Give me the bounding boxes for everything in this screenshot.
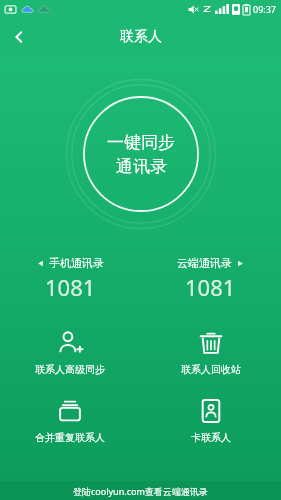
staticText: 通讯录 xyxy=(116,156,167,177)
staticText: 1081 xyxy=(45,272,96,302)
staticText: 合并重复联系人 xyxy=(35,431,105,444)
staticText: 登陆coolyun.com查看云端通讯录 xyxy=(73,485,208,497)
staticText: 一键同步 xyxy=(107,132,175,153)
staticText: 手机通讯录 xyxy=(49,256,104,270)
button[interactable]: 手机通讯录 xyxy=(0,256,140,302)
button[interactable]: 一键同步 xyxy=(65,78,217,230)
button[interactable]: 联系人回收站 xyxy=(140,328,281,378)
staticText: 1081 xyxy=(185,272,236,302)
button[interactable]: Back xyxy=(0,18,38,56)
button[interactable]: 卡联系人 xyxy=(140,396,281,446)
button[interactable]: 联系人高级同步 xyxy=(0,328,140,378)
button[interactable]: 登陆coolyun.com查看云端通讯录 xyxy=(0,481,281,500)
staticText: 卡联系人 xyxy=(191,431,231,444)
staticText: 联系人 xyxy=(120,28,162,46)
staticText: 云端通讯录 xyxy=(177,256,232,270)
button[interactable]: 合并重复联系人 xyxy=(0,396,140,446)
staticText: 联系人高级同步 xyxy=(35,363,105,376)
button[interactable]: 云端通讯录 xyxy=(140,256,281,302)
staticText: 联系人回收站 xyxy=(181,363,241,376)
staticText: 09:37 xyxy=(253,3,277,15)
